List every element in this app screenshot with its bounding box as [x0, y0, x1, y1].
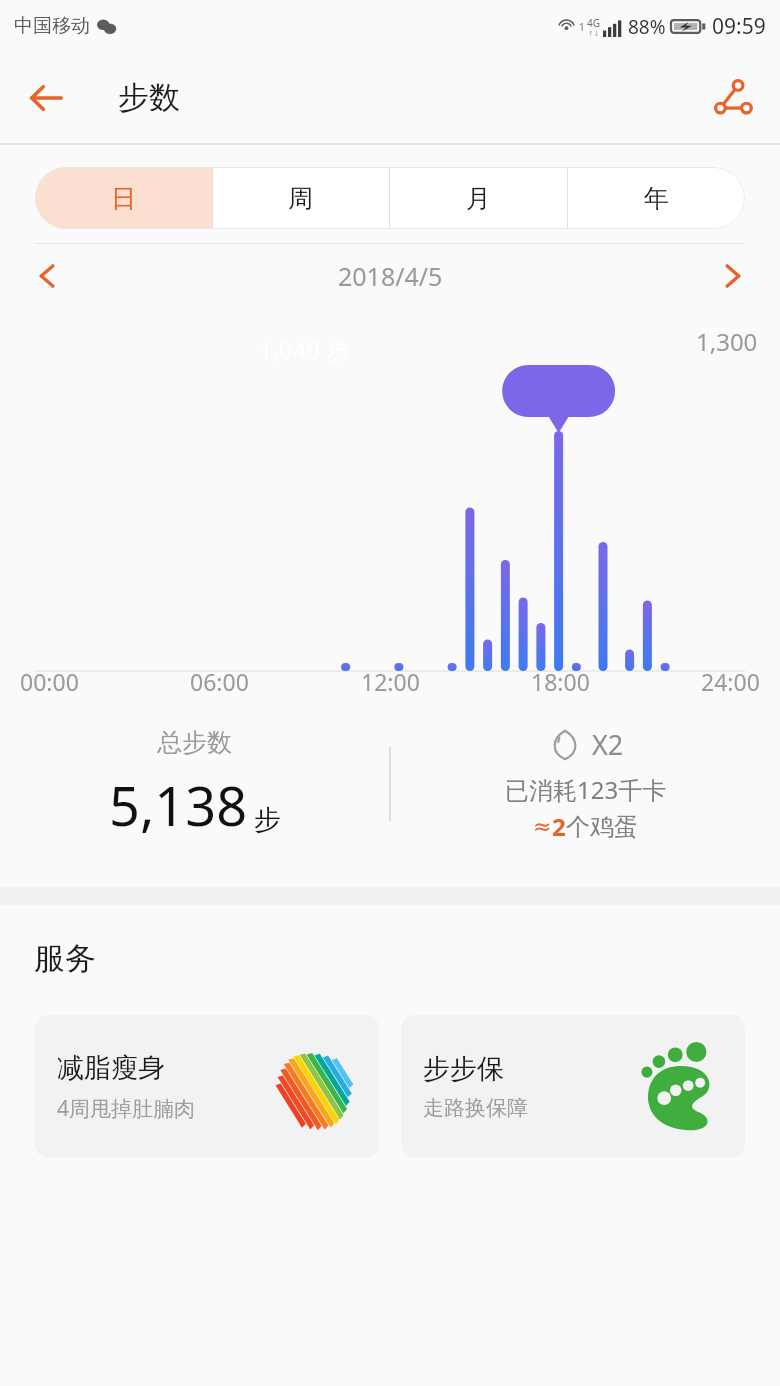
staticText: 总步数	[157, 727, 232, 758]
staticText: 24:00	[701, 666, 760, 697]
staticText: 12:00	[361, 666, 420, 697]
button[interactable]: Next day	[706, 250, 758, 302]
button[interactable]: 月	[389, 167, 567, 229]
staticText: 已消耗123千卡	[505, 773, 667, 806]
staticText: 2	[552, 810, 566, 843]
staticText: 日	[111, 183, 136, 214]
button[interactable]: Share	[704, 69, 762, 127]
staticText: 1,300	[696, 325, 758, 358]
button[interactable]: 步步保	[401, 1015, 745, 1158]
button[interactable]: 年	[567, 167, 745, 229]
staticText: 减脂瘦身	[57, 1051, 165, 1085]
button[interactable]: 周	[212, 167, 389, 229]
staticText: 步步保	[423, 1052, 504, 1086]
staticText: 年	[644, 183, 669, 214]
staticText: 88%	[628, 14, 666, 40]
button[interactable]: 日	[35, 167, 212, 229]
button[interactable]: 减脂瘦身	[35, 1015, 379, 1158]
staticText: 5,138	[109, 768, 248, 842]
staticText: 2018/4/5	[338, 259, 443, 293]
button[interactable]: Back	[18, 70, 74, 126]
staticText: 06:00	[190, 666, 249, 697]
staticText: 1	[579, 20, 585, 34]
staticText: 个鸡蛋	[566, 812, 638, 842]
staticText: 步	[254, 803, 281, 837]
staticText: 09:59	[712, 12, 766, 41]
staticText: 月	[466, 183, 491, 214]
staticText: ≈	[533, 814, 552, 840]
staticText: ↑↓	[588, 30, 600, 38]
staticText: 服务	[34, 939, 96, 978]
staticText: 走路换保障	[423, 1095, 528, 1121]
staticText: 4G	[587, 16, 600, 30]
button[interactable]: Previous day	[22, 250, 74, 302]
staticText: X2	[592, 726, 624, 763]
staticText: 00:00	[20, 666, 79, 697]
staticText: 周	[288, 183, 313, 214]
staticText: 步数	[118, 78, 180, 117]
staticText: 4周甩掉肚腩肉	[57, 1094, 196, 1123]
staticText: 18:00	[531, 666, 590, 697]
staticText: 中国移动	[14, 14, 90, 38]
